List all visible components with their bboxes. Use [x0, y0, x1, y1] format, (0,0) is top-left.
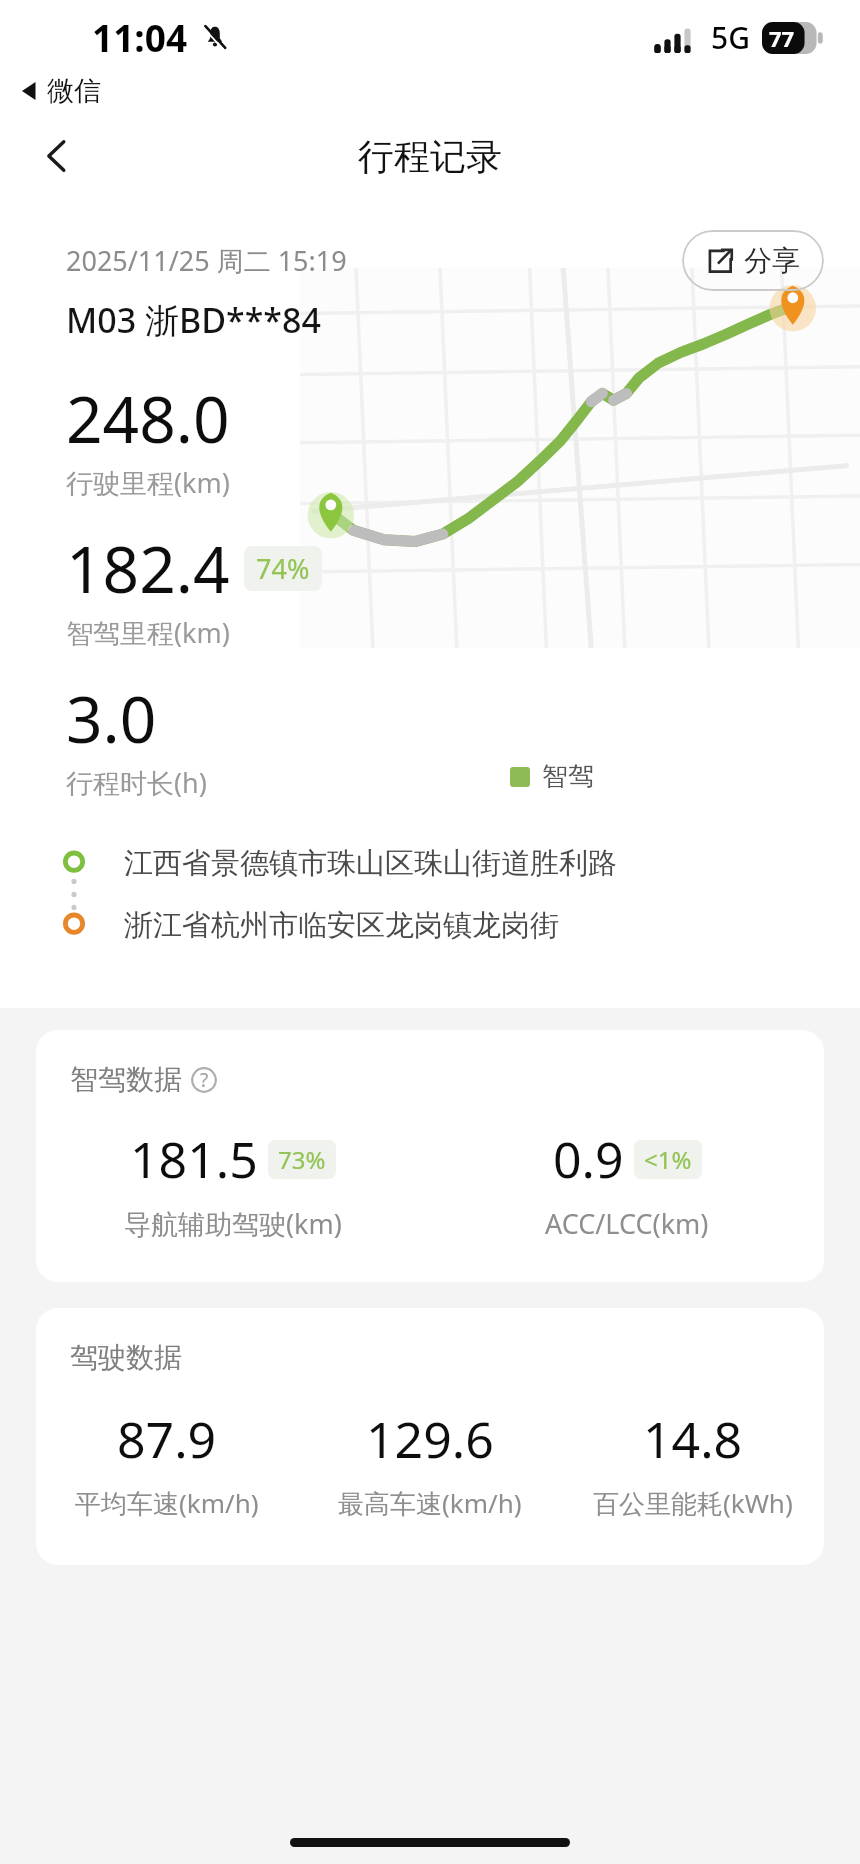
button[interactable]: 说明	[190, 1066, 218, 1094]
staticText: 129.6	[366, 1405, 494, 1473]
staticText: 182.4	[66, 525, 230, 612]
staticText: 微信	[47, 74, 101, 108]
staticText: 3.0	[66, 675, 157, 762]
staticText: 248.0	[66, 375, 230, 462]
staticText: 11:04	[92, 12, 188, 62]
staticText: 行程时长(h)	[66, 764, 207, 801]
staticText: 最高车速(km/h)	[338, 1485, 522, 1521]
staticText: 百公里能耗(kWh)	[593, 1485, 793, 1521]
staticText: 行程记录	[358, 134, 502, 179]
staticText: 74%	[256, 550, 310, 587]
staticText: ?	[200, 1067, 209, 1093]
staticText: 87.9	[117, 1405, 217, 1473]
staticText: 分享	[744, 243, 800, 278]
staticText: ACC/LCC(km)	[545, 1205, 709, 1242]
staticText: 5G	[711, 17, 750, 58]
staticText: 73%	[278, 1143, 326, 1176]
staticText: 2025/11/25 周二 15:19	[66, 242, 347, 279]
staticText: 行驶里程(km)	[66, 464, 230, 501]
staticText: 平均车速(km/h)	[75, 1485, 259, 1521]
button[interactable]: 微信	[22, 74, 101, 108]
staticText: 浙江省杭州市临安区龙岗镇龙岗街	[124, 907, 559, 944]
button[interactable]: 返回	[28, 127, 86, 185]
staticText: 181.5	[130, 1125, 258, 1193]
staticText: 导航辅助驾驶(km)	[124, 1205, 342, 1242]
staticText: 驾驶数据	[70, 1340, 182, 1375]
staticText: M03 浙BD***84	[66, 297, 321, 343]
staticText: 0.9	[553, 1125, 624, 1193]
staticText: 智驾数据	[70, 1062, 182, 1097]
staticText: 江西省景德镇市珠山区珠山街道胜利路	[124, 845, 617, 882]
staticText: 14.8	[643, 1405, 743, 1473]
button[interactable]: 分享	[682, 230, 824, 291]
staticText: 智驾	[542, 760, 594, 793]
staticText: 智驾里程(km)	[66, 614, 230, 651]
staticText: <1%	[644, 1143, 692, 1176]
staticText: 77	[769, 23, 795, 53]
